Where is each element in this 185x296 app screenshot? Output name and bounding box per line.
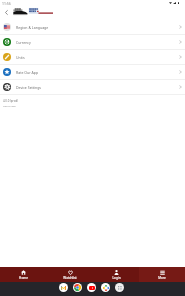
button[interactable]: Device Settings [0, 80, 185, 95]
staticText: 11:56 [2, 1, 11, 6]
staticText: Device Settings [16, 85, 42, 90]
staticText: Home [19, 276, 28, 280]
button[interactable]: Units [0, 50, 185, 65]
staticText: Units [16, 55, 25, 60]
staticText: Tap to copy [3, 104, 16, 107]
button[interactable]: Gmail [59, 283, 68, 292]
button[interactable]: Watchlist [47, 267, 93, 282]
button[interactable]: All apps [115, 283, 124, 292]
staticText: Login [112, 276, 121, 280]
button[interactable]: Chrome [73, 283, 82, 292]
button[interactable]: Currency [0, 35, 185, 50]
staticText: Region & Language [16, 25, 49, 30]
staticText: More [158, 276, 166, 280]
button[interactable]: More [139, 267, 185, 282]
button[interactable]: 4.0.0 (prod) [3, 99, 18, 107]
button[interactable]: Photos [101, 283, 110, 292]
button[interactable]: Region & Language [0, 20, 185, 35]
staticText: Watchlist [63, 276, 77, 280]
button[interactable]: YouTube [87, 283, 96, 292]
button[interactable]: Login [93, 267, 139, 282]
button[interactable]: Back [1, 7, 12, 18]
staticText: 4.0.0 (prod) [3, 99, 18, 103]
staticText: Currency [16, 40, 31, 45]
staticText: Rate Our App [16, 70, 39, 75]
button[interactable]: Rate Our App [0, 65, 185, 80]
button[interactable]: Home [0, 267, 47, 282]
